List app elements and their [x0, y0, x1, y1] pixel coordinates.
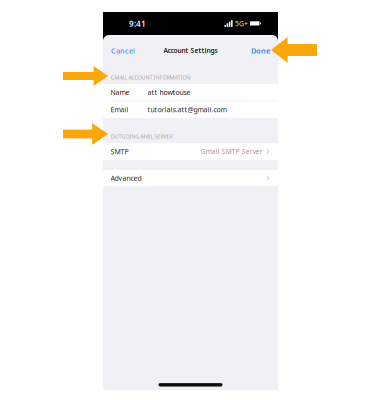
button[interactable]: SMTP: [103, 143, 278, 160]
button[interactable]: Done: [243, 38, 278, 63]
button[interactable]: Cancel: [103, 38, 143, 63]
staticText: GMAIL ACCOUNT INFORMATION: [111, 74, 191, 81]
staticText: Advanced: [111, 173, 142, 183]
staticText: 5G+: [235, 19, 248, 28]
staticText: Name: [111, 87, 130, 97]
staticText: tutorials.att@gmail.com: [148, 105, 227, 114]
staticText: 9:41: [129, 18, 146, 29]
staticText: Cancel: [111, 45, 135, 56]
staticText: Gmail SMTP Server: [201, 147, 263, 156]
staticText: Account Settings: [163, 46, 217, 55]
staticText: Done: [251, 45, 270, 56]
staticText: OUTGOING MAIL SERVER: [111, 133, 173, 140]
button[interactable]: Advanced: [103, 170, 278, 186]
staticText: Email: [111, 105, 129, 114]
staticText: SMTP: [111, 147, 129, 156]
staticText: att howtouse: [148, 87, 191, 97]
